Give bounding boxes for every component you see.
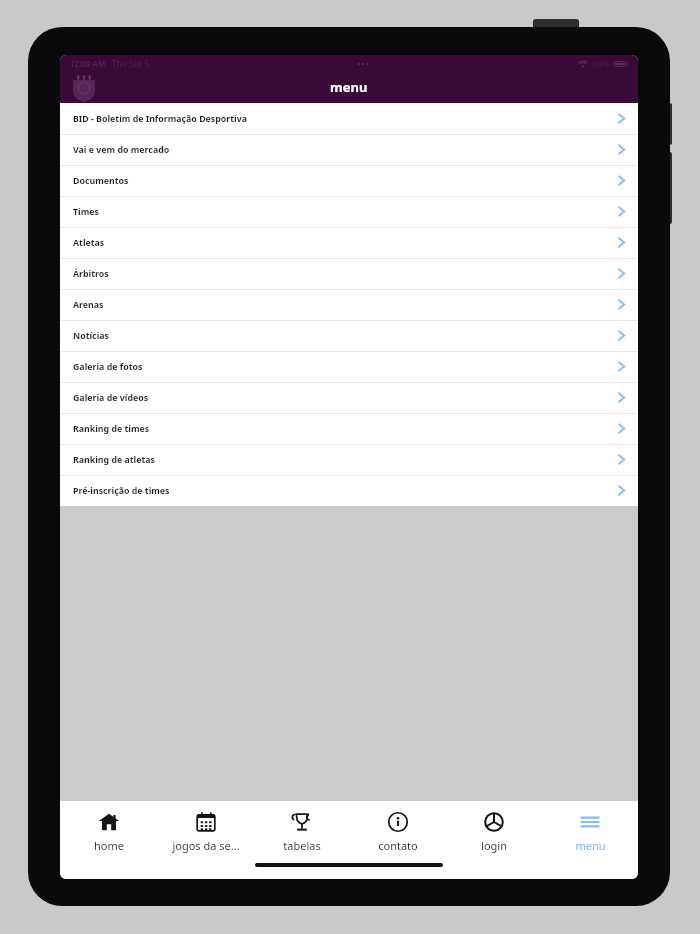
staticText: contato xyxy=(378,838,418,853)
button[interactable]: Notícias xyxy=(60,320,638,351)
staticText: Galeria de vídeos xyxy=(73,392,149,404)
button[interactable]: Ranking de times xyxy=(60,413,638,444)
staticText: Ranking de atletas xyxy=(73,454,155,466)
staticText: BID - Boletim de Informação Desportiva xyxy=(73,113,247,125)
staticText: menu xyxy=(575,838,606,853)
staticText: Galeria de fotos xyxy=(73,361,143,373)
button[interactable]: Atletas xyxy=(60,227,638,258)
staticText: jogos da se... xyxy=(172,838,240,853)
button[interactable]: Times xyxy=(60,196,638,227)
button[interactable]: Galeria de fotos xyxy=(60,351,638,382)
staticText: Árbitros xyxy=(73,268,109,280)
button[interactable]: BID - Boletim de Informação Desportiva xyxy=(60,103,638,134)
staticText: Atletas xyxy=(73,237,105,249)
button[interactable]: Documentos xyxy=(60,165,638,196)
button[interactable]: Logo xyxy=(71,73,97,102)
staticText: Notícias xyxy=(73,330,109,342)
button[interactable]: Ranking de atletas xyxy=(60,444,638,475)
staticText: Thu Sep 5 xyxy=(112,58,149,69)
button[interactable]: Vai e vem do mercado xyxy=(60,134,638,165)
staticText: 100% xyxy=(591,59,611,69)
button[interactable]: Arenas xyxy=(60,289,638,320)
button[interactable]: Pré-inscrição de times xyxy=(60,475,638,506)
button[interactable]: jogos da se... xyxy=(157,801,254,863)
staticText: menu xyxy=(330,78,368,96)
staticText: Arenas xyxy=(73,299,104,311)
button[interactable]: menu xyxy=(542,801,638,863)
staticText: Times xyxy=(73,206,99,218)
staticText: 12:09 AM xyxy=(70,58,106,69)
staticText: Ranking de times xyxy=(73,423,150,435)
button[interactable]: contato xyxy=(350,801,446,863)
button[interactable]: login xyxy=(446,801,542,863)
staticText: Pré-inscrição de times xyxy=(73,485,170,497)
button[interactable]: Árbitros xyxy=(60,258,638,289)
staticText: home xyxy=(94,838,124,853)
button[interactable]: home xyxy=(60,801,157,863)
staticText: login xyxy=(481,838,507,853)
staticText: Documentos xyxy=(73,175,129,187)
staticText: tabelas xyxy=(283,838,321,853)
button[interactable]: tabelas xyxy=(254,801,350,863)
staticText: Vai e vem do mercado xyxy=(73,144,170,156)
button[interactable]: Galeria de vídeos xyxy=(60,382,638,413)
